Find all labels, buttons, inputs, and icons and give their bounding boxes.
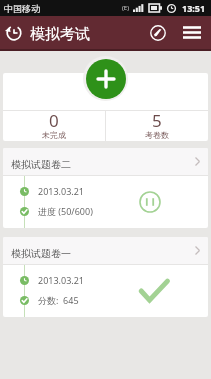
staticText: 中国移动 (4, 3, 40, 14)
staticText: 考卷数 (145, 130, 169, 140)
staticText: 2013.03.21 (38, 274, 85, 286)
staticText: 13:51 (182, 2, 206, 14)
staticText: (E) (122, 4, 129, 12)
button[interactable]: Menu (177, 16, 207, 49)
button[interactable]: 5 (106, 111, 208, 141)
staticText: 5 (152, 109, 162, 132)
button[interactable]: Pause (138, 190, 162, 214)
staticText: 模拟考试 (30, 25, 90, 44)
staticText: 进度 (50/600) (38, 205, 93, 217)
button[interactable]: History (0, 16, 27, 49)
button[interactable]: Edit (139, 16, 177, 49)
staticText: 模拟试题卷二 (11, 158, 71, 171)
button[interactable]: 模拟试题卷二 (3, 148, 208, 228)
button[interactable]: 模拟试题卷一 (3, 237, 208, 317)
staticText: 2013.03.21 (38, 185, 85, 197)
button[interactable]: Add exam (86, 59, 126, 99)
staticText: 未完成 (42, 130, 66, 140)
staticText: 分数: 645 (38, 294, 79, 306)
button[interactable]: 0 (3, 111, 105, 141)
staticText: 0 (49, 109, 59, 132)
staticText: 模拟试题卷一 (11, 247, 71, 260)
